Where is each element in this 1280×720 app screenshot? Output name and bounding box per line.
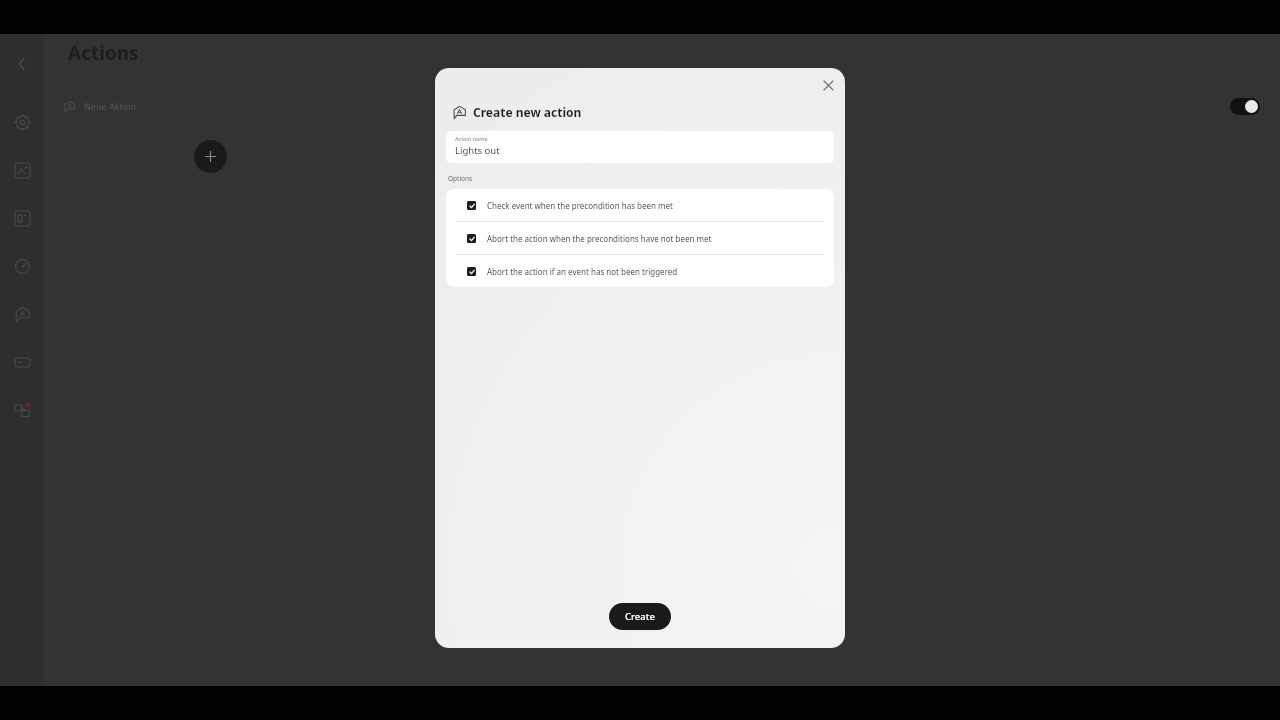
staticText: Options <box>448 174 473 183</box>
button[interactable]: Actions <box>0 290 44 338</box>
staticText: Check event when the precondition has be… <box>487 200 673 211</box>
button[interactable]: Close <box>817 74 839 96</box>
button[interactable]: Settings <box>0 98 44 146</box>
button[interactable]: Check event when the precondition has be… <box>446 189 834 221</box>
button[interactable]: Cards <box>0 338 44 386</box>
staticText: Create <box>625 610 655 623</box>
staticText: Lights out <box>455 144 500 157</box>
staticText: Abort the action when the preconditions … <box>487 233 712 244</box>
staticText: Abort the action if an event has not bee… <box>487 266 678 277</box>
button[interactable]: Abort the action if an event has not bee… <box>446 255 834 287</box>
button[interactable]: Abort the action when the preconditions … <box>446 222 834 254</box>
button[interactable]: Add action <box>194 140 227 173</box>
button[interactable]: Neue Aktion <box>44 88 1280 124</box>
button[interactable]: Nodes <box>0 386 44 434</box>
staticText: Neue Aktion <box>84 100 137 112</box>
button[interactable]: Dashboard <box>0 242 44 290</box>
button[interactable]: Create <box>609 603 671 630</box>
button[interactable]: Back <box>8 50 36 78</box>
staticText: Action name <box>455 135 488 142</box>
button[interactable]: Action name <box>446 131 834 163</box>
button[interactable]: Toggle action <box>1230 98 1260 115</box>
button[interactable]: Window <box>0 194 44 242</box>
staticText: Create new action <box>473 104 582 120</box>
staticText: Actions <box>68 40 139 66</box>
button[interactable]: Media <box>0 146 44 194</box>
